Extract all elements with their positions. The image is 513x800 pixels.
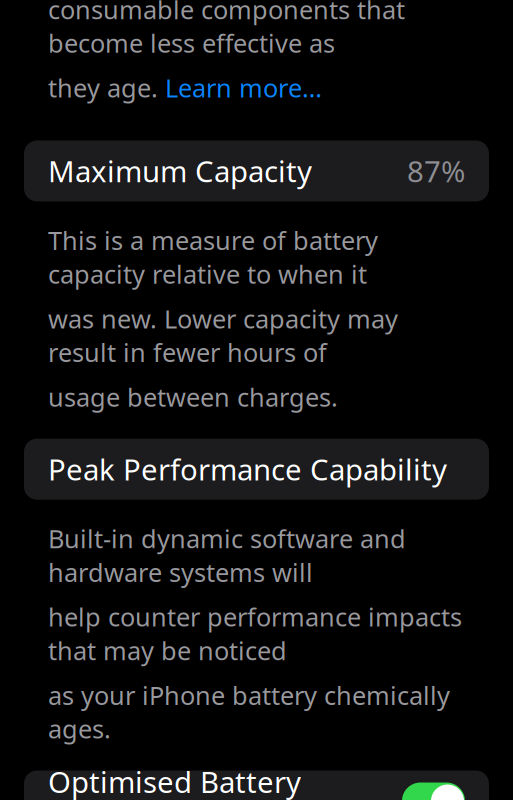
button[interactable]: Maximum Capacity xyxy=(24,140,489,201)
staticText: Optimised Battery Charging xyxy=(48,762,301,800)
button[interactable]: Optimised Battery Charging xyxy=(24,770,489,800)
staticText: Maximum Capacity xyxy=(48,151,312,190)
staticText: help counter performance impacts that ma… xyxy=(48,600,462,667)
staticText: as your iPhone battery chemically ages. xyxy=(48,678,450,745)
staticText: usage between charges. xyxy=(48,380,338,414)
staticText: This is a measure of battery capacity re… xyxy=(48,223,378,291)
staticText: consumable components that become less e… xyxy=(48,0,405,60)
button[interactable]: Peak Performance Capability xyxy=(24,439,489,500)
staticText: Built-in dynamic software and hardware s… xyxy=(48,522,406,589)
staticText: Peak Performance Capability xyxy=(48,450,447,489)
button[interactable]: Learn more… xyxy=(165,71,322,104)
staticText: was new. Lower capacity may result in fe… xyxy=(48,302,398,369)
staticText: Learn more… xyxy=(165,71,322,104)
staticText: 87% xyxy=(407,151,465,190)
staticText: they age. xyxy=(48,71,165,104)
